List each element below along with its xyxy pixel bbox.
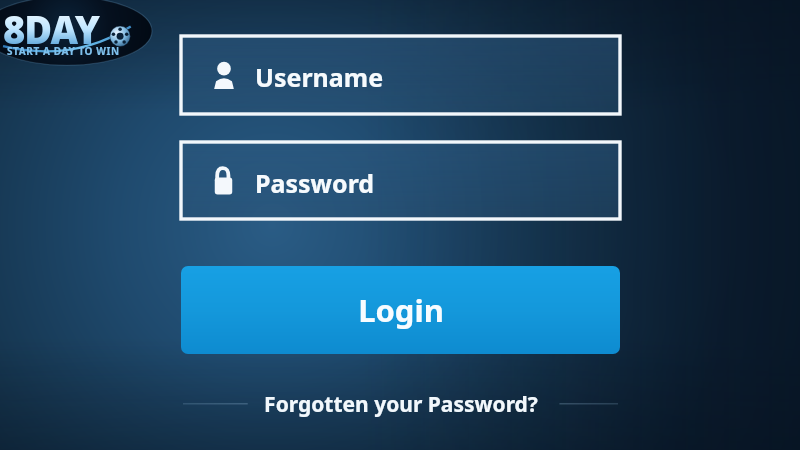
staticText: Forgotten your Password? [264, 390, 538, 419]
staticText: Login [358, 289, 444, 331]
button[interactable]: Username [181, 36, 620, 114]
other: 8DAY logo [0, 0, 152, 66]
button[interactable]: Login [181, 266, 620, 354]
button[interactable]: Forgotten your Password? [181, 388, 620, 420]
staticText: START A DAY TO WIN [7, 44, 120, 58]
button[interactable]: Password [181, 142, 620, 219]
staticText: Username [255, 60, 384, 94]
staticText: 8DAY [3, 3, 99, 55]
staticText: Password [255, 166, 375, 200]
